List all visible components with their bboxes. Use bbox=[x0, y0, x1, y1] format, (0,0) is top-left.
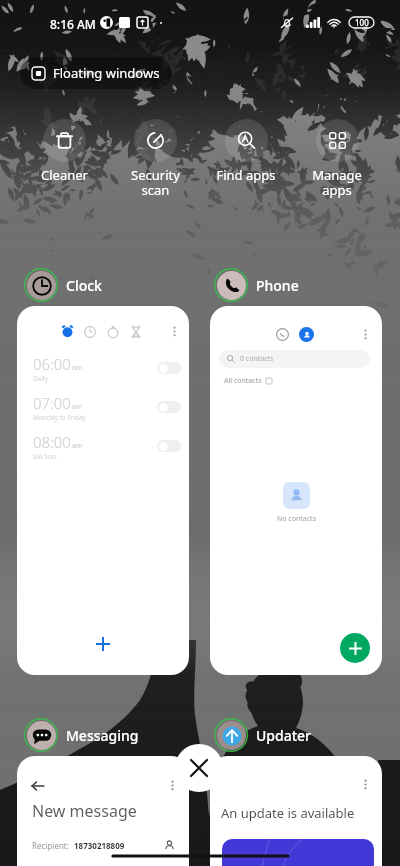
button[interactable]: Contacts bbox=[299, 327, 314, 342]
button[interactable]: Phone bbox=[214, 268, 299, 302]
button[interactable]: Alarm toggle bbox=[157, 440, 181, 452]
button[interactable]: Security scan bbox=[110, 119, 200, 199]
staticText: Find apps bbox=[216, 166, 276, 184]
button[interactable]: Cleaner bbox=[19, 119, 109, 184]
staticText: Daily bbox=[33, 374, 49, 383]
button[interactable]: Back bbox=[17, 756, 189, 866]
button[interactable]: Back bbox=[31, 779, 45, 793]
button[interactable]: 0 contacts bbox=[219, 350, 370, 368]
staticText: am bbox=[72, 363, 83, 373]
staticText: 8:16 AM bbox=[50, 16, 96, 32]
staticText: 100 bbox=[355, 17, 369, 28]
staticText: 07:00 bbox=[33, 393, 71, 413]
button[interactable]: Updater bbox=[214, 718, 312, 752]
staticText: Manage apps bbox=[312, 166, 362, 199]
staticText: Monday to Friday bbox=[33, 413, 87, 422]
button[interactable]: Recents bbox=[276, 328, 289, 341]
button[interactable]: Find apps bbox=[201, 119, 291, 184]
button[interactable]: Floating windows bbox=[20, 57, 172, 89]
button[interactable]: Add alarm bbox=[88, 629, 118, 659]
staticText: 08:00 bbox=[33, 432, 71, 452]
button[interactable]: 08:00 bbox=[33, 430, 181, 462]
staticText: Floating windows bbox=[53, 64, 160, 82]
button[interactable]: Clock bbox=[24, 268, 102, 302]
staticText: 18730218809 bbox=[74, 840, 125, 851]
staticText: Recipient: bbox=[32, 840, 69, 851]
staticText: New message bbox=[32, 800, 137, 822]
staticText: 0 contacts bbox=[240, 354, 274, 364]
button[interactable]: 06:00 bbox=[17, 306, 189, 675]
button[interactable]: Alarm toggle bbox=[157, 401, 181, 413]
staticText: Phone bbox=[256, 276, 299, 295]
button[interactable]: 06:00 bbox=[33, 352, 181, 384]
button[interactable]: Recents bbox=[210, 306, 382, 675]
staticText: Clock bbox=[66, 276, 102, 295]
staticText: No contacts bbox=[277, 514, 316, 524]
staticText: Security scan bbox=[131, 166, 180, 199]
staticText: Messaging bbox=[66, 726, 139, 745]
staticText: An update is available bbox=[221, 804, 355, 822]
button[interactable]: Add contact bbox=[340, 633, 370, 663]
staticText: Updater bbox=[256, 726, 312, 745]
staticText: 06:00 bbox=[33, 354, 71, 374]
staticText: am bbox=[72, 402, 83, 412]
button[interactable]: An update is available bbox=[210, 756, 382, 866]
button[interactable]: Messaging bbox=[24, 718, 139, 752]
staticText: Cleaner bbox=[41, 166, 88, 184]
staticText: All contacts bbox=[224, 376, 262, 386]
staticText: am bbox=[72, 441, 83, 451]
button[interactable]: Alarm toggle bbox=[157, 362, 181, 374]
button[interactable]: Close all bbox=[175, 744, 223, 792]
button[interactable]: Manage apps bbox=[292, 119, 382, 199]
staticText: Sat Sun. bbox=[33, 452, 58, 461]
button[interactable]: 07:00 bbox=[33, 391, 181, 423]
